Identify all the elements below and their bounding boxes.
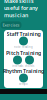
staticText: Exercises xyxy=(2,22,19,28)
staticText: Staff Training xyxy=(6,30,40,38)
staticText: chords xyxy=(25,64,34,68)
staticText: Make skills useful for any musician xyxy=(4,0,38,19)
staticText: note reading xyxy=(14,45,33,49)
staticText: intervals xyxy=(12,64,23,68)
staticText: tempo xyxy=(19,82,28,86)
staticText: Rhythm Training xyxy=(3,67,44,75)
staticText: Pitch Training xyxy=(6,49,41,57)
